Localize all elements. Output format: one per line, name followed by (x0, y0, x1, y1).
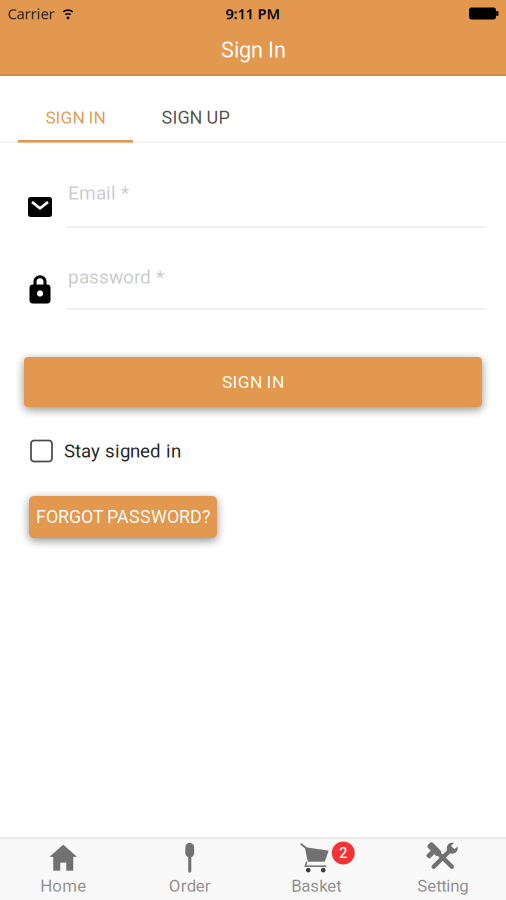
button[interactable]: Setting (379, 839, 506, 899)
staticText: FORGOT PASSWORD? (36, 506, 210, 527)
staticText: Sign In (221, 37, 286, 63)
button[interactable]: FORGOT PASSWORD? (29, 496, 217, 538)
button[interactable]: SIGN IN (18, 93, 133, 141)
staticText: password * (68, 266, 164, 288)
staticText: Stay signed in (64, 440, 181, 462)
button[interactable]: Order (126, 839, 253, 899)
button[interactable]: Stay signed in (31, 431, 211, 471)
button[interactable]: SIGN IN (24, 357, 482, 407)
staticText: SIGN UP (161, 107, 229, 128)
staticText: Basket (291, 876, 341, 896)
button[interactable]: SIGN UP (132, 93, 258, 141)
staticText: Order (169, 876, 211, 896)
button[interactable]: Basket (253, 839, 379, 899)
staticText: Home (40, 876, 86, 896)
staticText: SIGN IN (45, 107, 105, 128)
staticText: Email * (68, 182, 129, 204)
staticText: SIGN IN (222, 372, 284, 392)
staticText: Setting (417, 876, 468, 896)
button[interactable]: Home (0, 839, 126, 899)
staticText: 2 (339, 845, 347, 861)
staticText: Carrier (7, 4, 54, 23)
staticText: 9:11 PM (225, 4, 280, 23)
